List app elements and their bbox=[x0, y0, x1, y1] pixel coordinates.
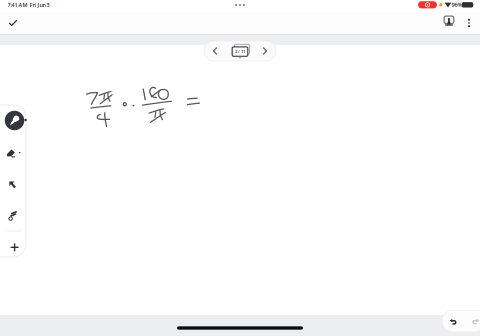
button[interactable]: More options bbox=[460, 12, 478, 34]
button[interactable]: Add tool bbox=[3, 236, 27, 258]
button[interactable]: Selection tool bbox=[2, 174, 26, 196]
button[interactable]: Pen tool, selected bbox=[2, 108, 26, 132]
button[interactable]: Next page bbox=[256, 41, 274, 61]
button[interactable]: Undo bbox=[443, 311, 463, 332]
button[interactable]: Laser pointer tool bbox=[2, 205, 26, 227]
button[interactable]: Page 2 of 11 bbox=[227, 41, 253, 61]
button[interactable]: Eraser tool bbox=[2, 142, 26, 164]
button[interactable]: Redo bbox=[466, 311, 480, 332]
staticText: 7:41 AM Fri Jun 3 bbox=[7, 1, 49, 9]
button[interactable]: Done bbox=[0, 12, 27, 34]
button[interactable]: Present bbox=[439, 12, 459, 34]
button[interactable]: Previous page bbox=[206, 41, 224, 61]
staticText: 2 / 11 bbox=[235, 48, 245, 54]
staticText: 96% bbox=[451, 1, 462, 8]
